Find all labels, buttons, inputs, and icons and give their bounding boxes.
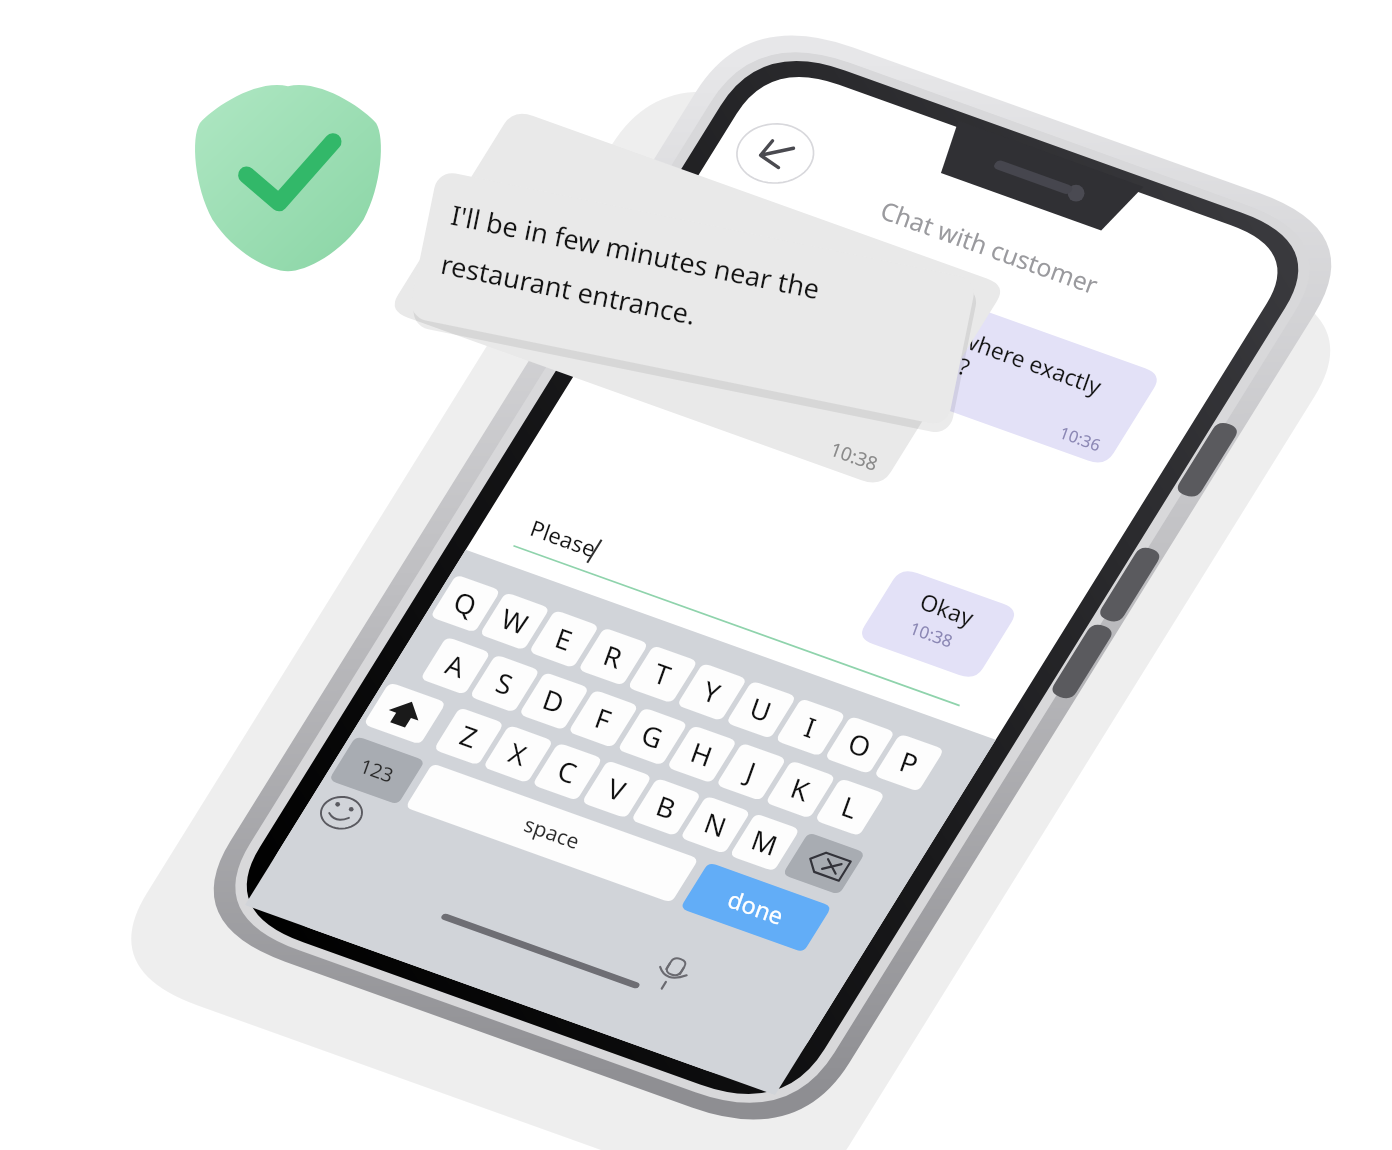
button[interactable]: Chat with customer screen bbox=[0, 0, 1392, 1150]
